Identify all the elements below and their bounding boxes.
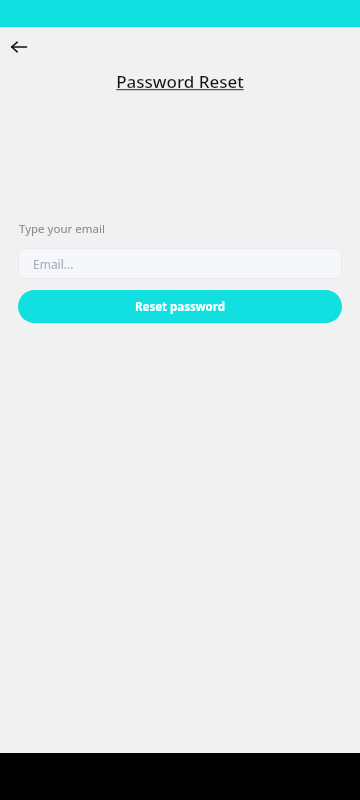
button[interactable]: Back [5,33,33,61]
staticText: Reset password [135,299,225,315]
staticText: Type your email [19,221,105,237]
button[interactable]: Reset password [18,290,342,323]
staticText: Password Reset [116,70,244,93]
button[interactable]: Email... [18,248,342,279]
staticText: Email... [33,256,74,272]
